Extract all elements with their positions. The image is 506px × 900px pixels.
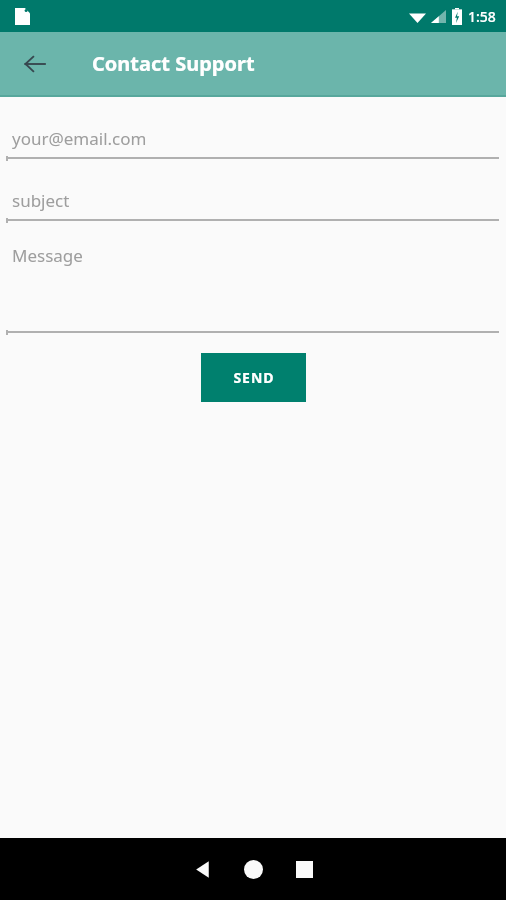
staticText: SEND xyxy=(233,368,275,387)
button[interactable]: your@email.com xyxy=(0,120,506,163)
staticText: subject xyxy=(12,189,70,212)
button[interactable]: Back xyxy=(179,845,227,893)
button[interactable]: SEND xyxy=(201,353,306,402)
button[interactable]: Recent apps xyxy=(280,845,328,893)
button[interactable]: Message xyxy=(0,244,506,337)
staticText: your@email.com xyxy=(12,127,147,150)
button[interactable]: subject xyxy=(0,182,506,225)
staticText: Contact Support xyxy=(92,50,255,77)
staticText: Message xyxy=(12,244,83,267)
staticText: 1:58 xyxy=(468,7,496,26)
button[interactable]: Home xyxy=(229,845,277,893)
button[interactable]: Back xyxy=(11,40,59,88)
